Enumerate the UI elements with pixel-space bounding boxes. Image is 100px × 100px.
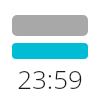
button[interactable]: Upper segment (12, 15, 88, 36)
button[interactable]: Lower segment (12, 43, 88, 59)
staticText: 23:59 (17, 61, 83, 91)
button[interactable]: 23:59 (0, 61, 100, 91)
